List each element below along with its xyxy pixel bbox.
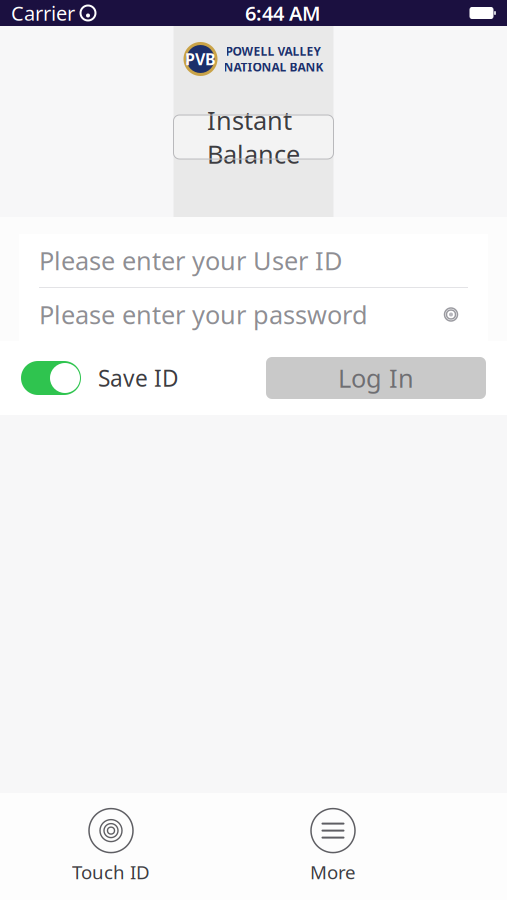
button[interactable]: Save ID — [21, 361, 179, 395]
button[interactable]: Show password — [434, 297, 468, 331]
staticText: Carrier — [11, 0, 75, 26]
button[interactable]: Instant Balance — [173, 115, 333, 159]
staticText: Save ID — [98, 363, 179, 393]
button[interactable]: More — [285, 807, 381, 885]
staticText: 6:44 AM — [245, 0, 321, 26]
staticText: Instant Balance — [207, 103, 300, 171]
button[interactable]: Log In — [266, 357, 486, 399]
button[interactable]: Touch ID — [63, 807, 159, 885]
staticText: Please enter your User ID — [39, 244, 342, 277]
staticText: Touch ID — [72, 860, 150, 884]
staticText: POWELL VALLEY — [225, 43, 321, 59]
staticText: Please enter your password — [39, 298, 368, 331]
staticText: More — [310, 860, 356, 884]
staticText: PVB — [185, 48, 216, 70]
staticText: NATIONAL BANK — [223, 59, 323, 75]
staticText: Log In — [338, 361, 414, 395]
